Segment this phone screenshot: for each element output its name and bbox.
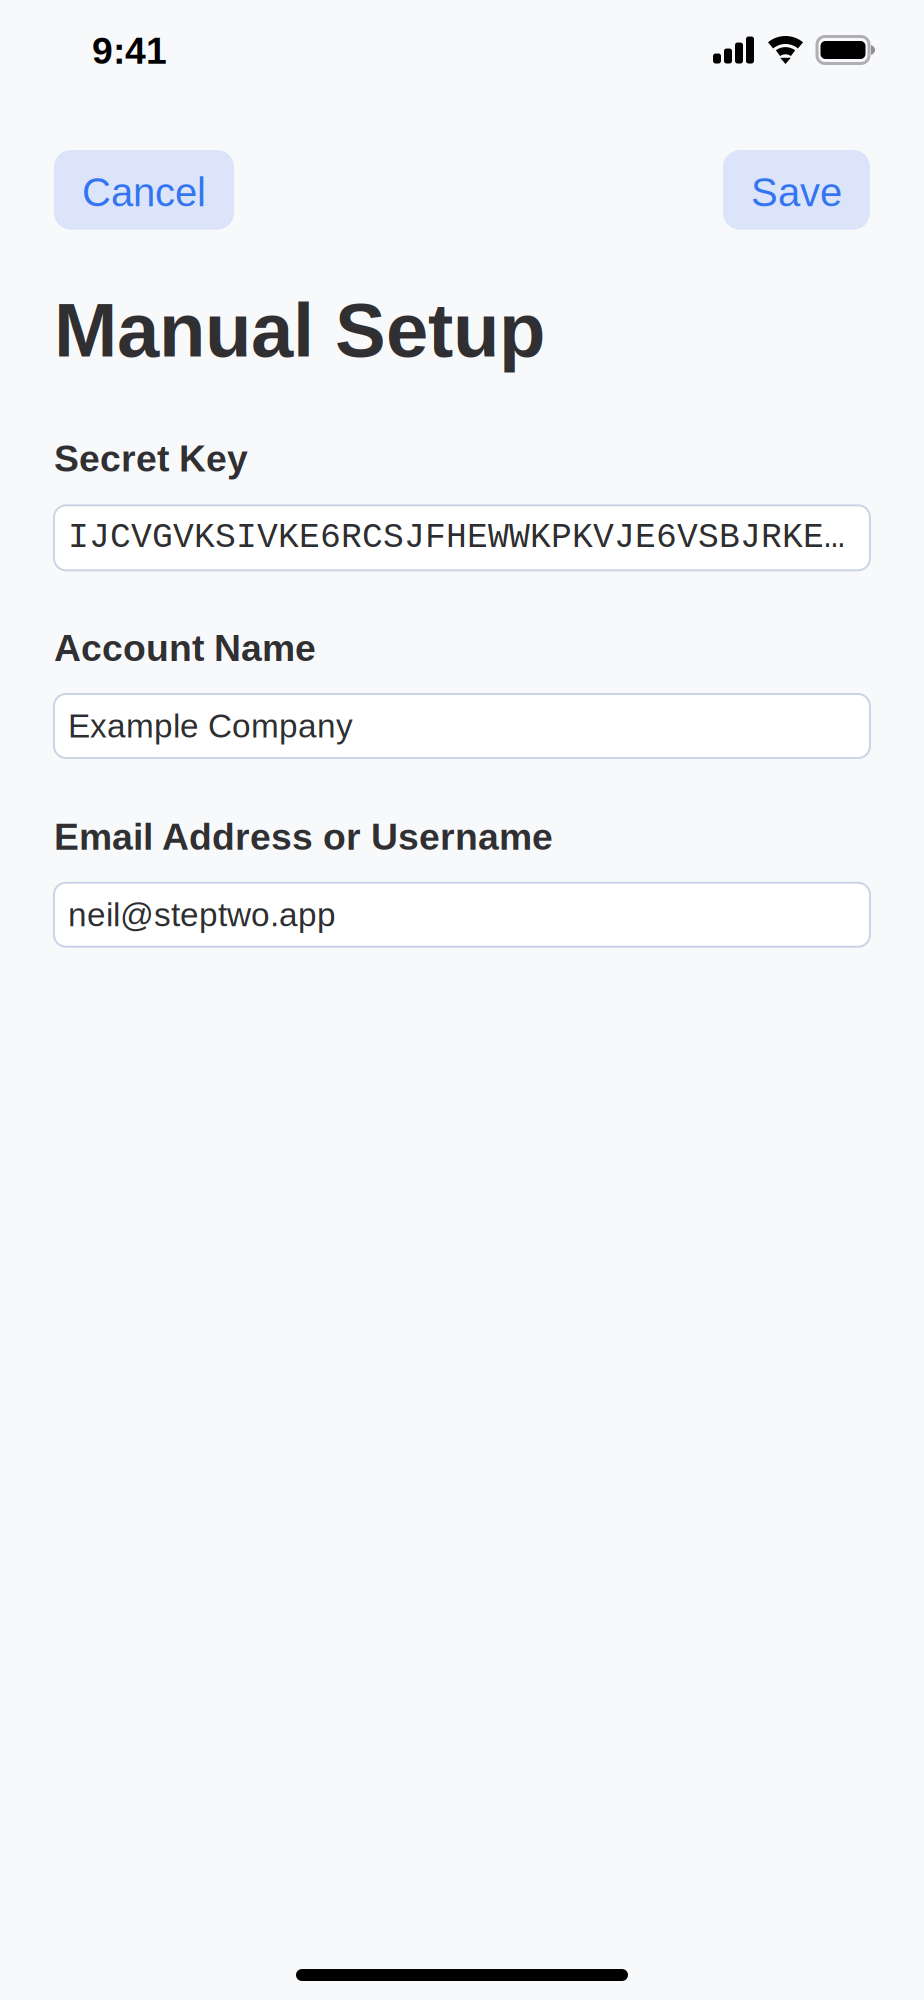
staticText: IJCVGVKSIVKE6RCSJFHEWWKPKVJE6VSBJRKE… (68, 518, 845, 557)
staticText: Example Company (68, 707, 353, 745)
staticText: Secret Key (54, 438, 248, 479)
staticText: Save (751, 170, 842, 215)
staticText: Account Name (54, 627, 316, 669)
button[interactable]: Cancel (54, 150, 234, 230)
staticText: Cancel (82, 170, 206, 215)
staticText: 9:41 (92, 30, 167, 72)
staticText: neil@steptwo.app (68, 896, 336, 933)
staticText: Email Address or Username (54, 816, 553, 858)
staticText: Manual Setup (54, 288, 545, 373)
button[interactable]: Save (723, 150, 870, 230)
